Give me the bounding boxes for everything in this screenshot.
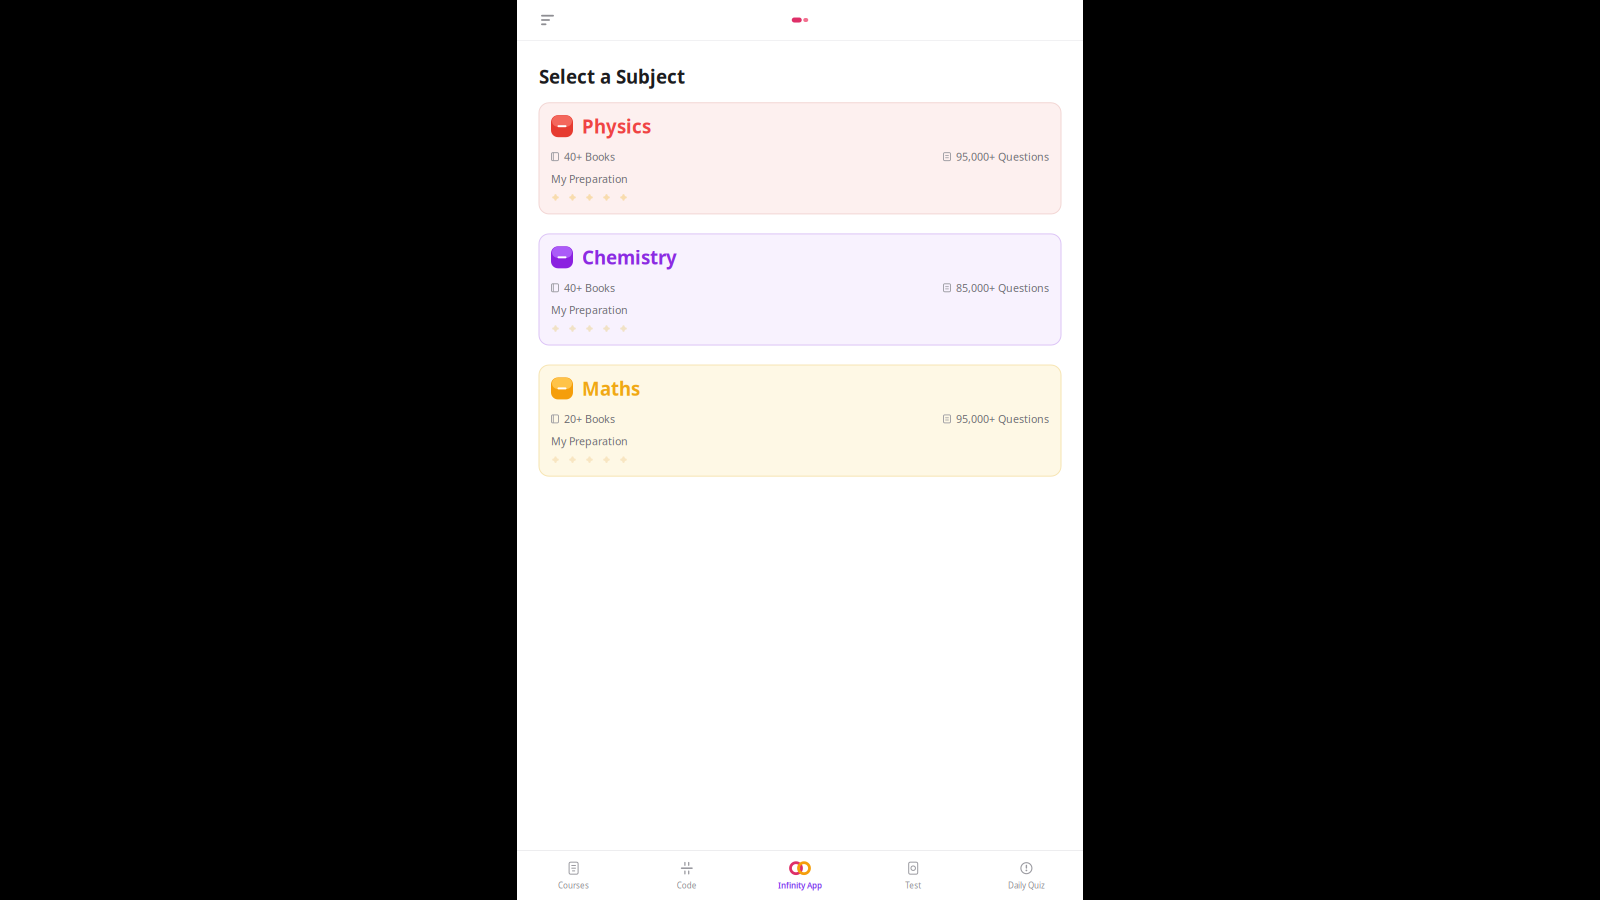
button[interactable]: Maths (539, 365, 1061, 476)
staticText: 40+ Books (564, 281, 615, 295)
staticText: Code (677, 880, 697, 891)
staticText: 95,000+ Questions (956, 150, 1049, 164)
staticText: 85,000+ Questions (956, 281, 1049, 295)
staticText: Maths (582, 376, 640, 401)
staticText: Infinity App (778, 880, 822, 891)
button[interactable]: Daily Quiz (970, 851, 1083, 900)
button[interactable]: Test (857, 851, 970, 900)
staticText: 40+ Books (564, 150, 615, 164)
staticText: Select a Subject (539, 64, 685, 89)
staticText: Chemistry (582, 245, 677, 270)
staticText: Daily Quiz (1008, 880, 1045, 891)
staticText: Physics (582, 114, 651, 139)
staticText: My Preparation (551, 434, 628, 448)
button[interactable]: Physics (539, 103, 1061, 214)
staticText: Courses (558, 880, 589, 891)
staticText: My Preparation (551, 172, 628, 186)
staticText: Test (905, 880, 921, 891)
staticText: 95,000+ Questions (956, 412, 1049, 426)
button[interactable]: Menu (517, 5, 571, 35)
staticText: My Preparation (551, 303, 628, 317)
button[interactable]: Code (630, 851, 743, 900)
staticText: 20+ Books (564, 412, 615, 426)
button[interactable]: Infinity App (743, 851, 857, 900)
button[interactable]: Chemistry (539, 234, 1061, 345)
button[interactable]: Courses (517, 851, 630, 900)
